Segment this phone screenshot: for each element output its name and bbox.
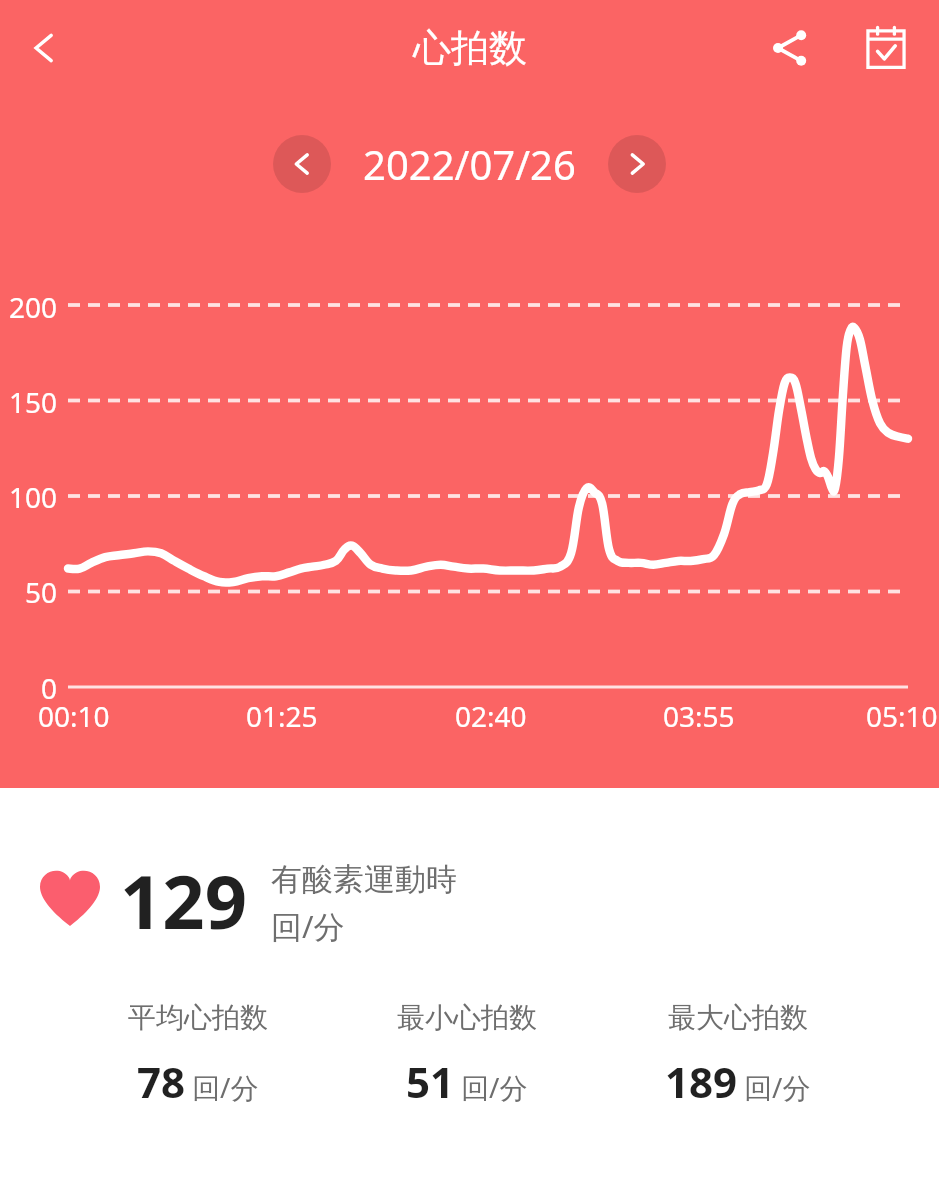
staticText: 00:10	[38, 697, 110, 735]
staticText: 05:10	[866, 697, 938, 735]
staticText: 最大心拍数	[668, 1000, 808, 1035]
staticText: 0	[0, 669, 57, 707]
button[interactable]: Calendar	[851, 13, 921, 83]
button[interactable]: Back	[6, 10, 82, 86]
staticText: 回/分	[192, 1068, 259, 1106]
staticText: 200	[0, 288, 57, 326]
staticText: 150	[0, 383, 57, 421]
button[interactable]: Share	[755, 13, 825, 83]
button[interactable]: 平均心拍数	[128, 1000, 268, 1110]
staticText: 78	[137, 1053, 186, 1110]
button[interactable]: Next day	[608, 135, 666, 193]
staticText: 最小心拍数	[397, 1000, 537, 1035]
staticText: 51	[406, 1053, 455, 1110]
staticText: 189	[665, 1053, 738, 1110]
button[interactable]: 最小心拍数	[397, 1000, 537, 1110]
staticText: 03:55	[663, 697, 735, 735]
staticText: 129	[120, 850, 247, 951]
staticText: 100	[0, 478, 57, 516]
staticText: 心拍数	[413, 24, 527, 72]
staticText: 回/分	[744, 1068, 811, 1106]
button[interactable]: Previous day	[273, 135, 331, 193]
staticText: 有酸素運動時	[271, 860, 457, 899]
button[interactable]: 129	[40, 850, 457, 951]
staticText: 回/分	[461, 1068, 528, 1106]
staticText: 2022/07/26	[363, 137, 576, 191]
staticText: 回/分	[271, 905, 345, 947]
button[interactable]: 最大心拍数	[665, 1000, 811, 1110]
staticText: 01:25	[246, 697, 318, 735]
staticText: 02:40	[455, 697, 527, 735]
staticText: 50	[0, 573, 57, 611]
staticText: 平均心拍数	[128, 1000, 268, 1035]
